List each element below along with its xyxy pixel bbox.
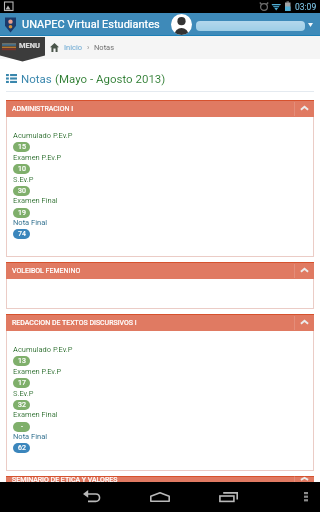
staticText: S.Ev.P bbox=[13, 389, 34, 398]
staticText: Acumulado P.Ev.P bbox=[13, 345, 73, 354]
button[interactable]: Open account menu bbox=[304, 18, 316, 31]
staticText: 03:09 bbox=[295, 2, 317, 12]
button[interactable]: MENU bbox=[0, 37, 45, 62]
staticText: Examen P.Ev.P bbox=[13, 153, 62, 162]
staticText: 30 bbox=[18, 187, 26, 195]
button[interactable]: Back bbox=[76, 486, 108, 508]
staticText: Examen Final bbox=[13, 196, 58, 205]
staticText: Examen P.Ev.P bbox=[13, 367, 62, 376]
staticText: 17 bbox=[18, 379, 26, 387]
button[interactable]: SEMINARIO DE ETICA Y VALORES bbox=[6, 476, 314, 482]
button[interactable]: REDACCION DE TEXTOS DISCURSIVOS I bbox=[6, 314, 314, 331]
staticText: 32 bbox=[18, 401, 26, 409]
button[interactable]: Account bbox=[171, 14, 192, 35]
staticText: 62 bbox=[18, 444, 26, 452]
staticText: › bbox=[87, 43, 90, 52]
staticText: 15 bbox=[18, 143, 26, 151]
staticText: 10 bbox=[18, 165, 26, 173]
staticText: Examen Final bbox=[13, 410, 58, 419]
staticText: 74 bbox=[18, 230, 26, 238]
staticText: MENU bbox=[19, 41, 41, 50]
staticText: Nota Final bbox=[13, 218, 48, 227]
staticText: UNAPEC Virtual Estudiantes bbox=[22, 18, 160, 31]
staticText: - bbox=[21, 423, 23, 431]
button[interactable]: Home bbox=[144, 486, 176, 508]
staticText: VOLEIBOL FEMENINO bbox=[12, 267, 294, 275]
staticText: Inicio bbox=[64, 43, 83, 52]
staticText: Nota Final bbox=[13, 432, 48, 441]
staticText: S.Ev.P bbox=[13, 175, 34, 184]
staticText: Notas bbox=[21, 72, 55, 85]
staticText: (Mayo - Agosto 2013) bbox=[55, 72, 166, 85]
button[interactable]: Recent apps bbox=[212, 486, 244, 508]
button[interactable]: More options bbox=[296, 486, 316, 508]
staticText: SEMINARIO DE ETICA Y VALORES bbox=[12, 476, 294, 482]
button[interactable]: VOLEIBOL FEMENINO bbox=[6, 262, 314, 279]
button[interactable]: ADMINISTRACION I bbox=[6, 100, 314, 117]
staticText: 13 bbox=[18, 357, 26, 365]
staticText: ADMINISTRACION I bbox=[12, 105, 294, 113]
staticText: 19 bbox=[18, 209, 26, 217]
staticText: Acumulado P.Ev.P bbox=[13, 131, 73, 140]
staticText: REDACCION DE TEXTOS DISCURSIVOS I bbox=[12, 319, 294, 327]
staticText: Notas bbox=[94, 43, 115, 52]
